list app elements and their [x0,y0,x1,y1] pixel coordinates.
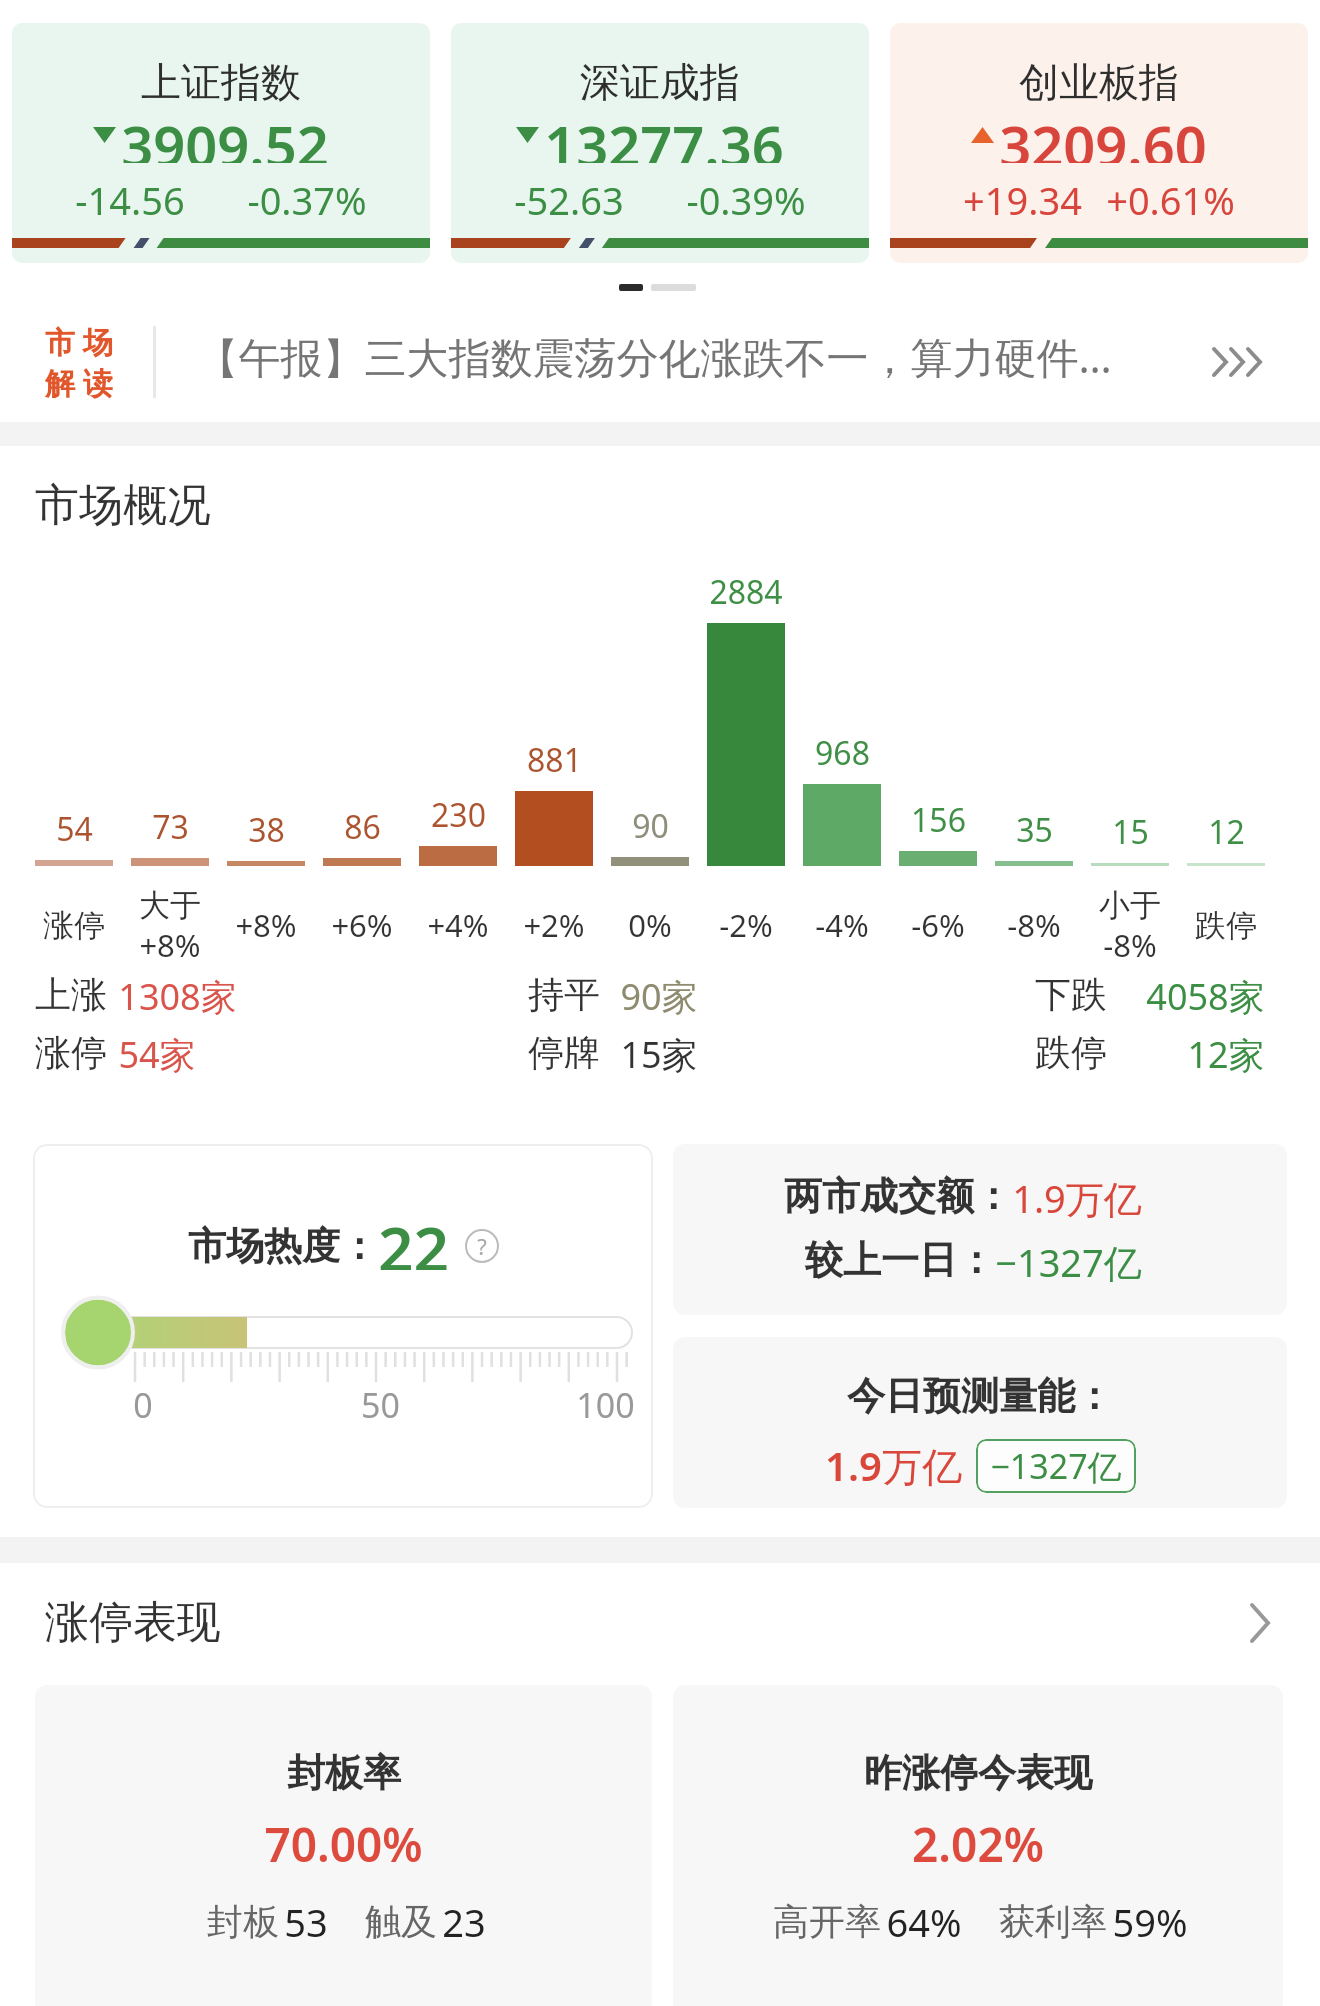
staticText: 创业板指 [1019,57,1179,105]
staticText: 230 [431,793,486,837]
staticText: -14.56 [75,174,185,220]
staticText: 0% [628,904,672,946]
staticText: 获利率 [994,1896,1112,1945]
staticText: 64% [886,1896,962,1948]
staticText: 昨涨停今表现 [864,1749,1092,1797]
staticText: 两市成交额： [784,1172,1012,1220]
staticText: 市场热度： [188,1222,378,1270]
staticText: 15家 [620,1030,698,1079]
button[interactable]: 涨停表现 [0,1585,1320,1660]
button[interactable]: 市场热度： [33,1144,653,1508]
staticText: 触及 [360,1896,442,1945]
staticText: -2% [719,904,773,946]
staticText: -6% [911,904,965,946]
staticText: 59% [1112,1896,1188,1948]
staticText: 1308家 [118,972,237,1021]
staticText: 968 [815,731,870,775]
staticText: +19.34 [963,174,1082,220]
staticText: -4% [815,904,869,946]
staticText: 涨停 [43,906,105,945]
staticText: 12 [1208,810,1245,854]
staticText: 高开率 [768,1896,886,1945]
staticText: 2884 [709,570,783,614]
staticText: 停牌 [528,1030,600,1075]
staticText: 封板 [202,1896,284,1945]
staticText: +8% [139,924,201,966]
staticText: 解 读 [45,362,113,403]
staticText: 38 [248,808,285,852]
staticText: +0.61% [1106,174,1235,220]
staticText: 70.00% [264,1813,423,1876]
staticText: 跌停 [1195,906,1257,945]
staticText: 73 [152,805,189,849]
staticText: -8% [1007,904,1061,946]
button[interactable]: 上证指数 [12,23,430,263]
staticText: 上涨 [35,972,107,1017]
button[interactable]: 市 场 [0,312,1320,412]
staticText: 下跌 [1035,972,1107,1017]
staticText: 90 [632,804,669,848]
staticText: 100 [576,1382,635,1428]
staticText: −1327亿 [995,1236,1142,1288]
staticText: 深证成指 [580,57,740,105]
staticText: ? [477,1231,487,1261]
staticText: -0.39% [686,174,806,220]
staticText: 3209.60 [999,107,1207,163]
staticText: 【午报】三大指数震荡分化涨跌不一，算力硬件… [196,328,1112,385]
staticText: 35 [1016,808,1053,852]
staticText: 大于 [139,886,201,925]
staticText: 4058家 [1146,972,1265,1021]
button[interactable]: 创业板指 [890,23,1308,263]
staticText: 上证指数 [141,57,301,105]
staticText: -0.37% [247,174,367,220]
staticText: 53 [284,1896,328,1948]
staticText: 13277.36 [544,107,784,163]
staticText: 881 [527,738,582,782]
staticText: 跌停 [1035,1030,1107,1075]
staticText: 2.02% [912,1813,1044,1876]
staticText: 3909.52 [121,107,329,163]
staticText: -52.63 [514,174,624,220]
staticText: +6% [331,904,393,946]
staticText: 15 [1112,810,1149,854]
staticText: 市场概况 [35,478,211,533]
staticText: 今日预测量能： [847,1372,1113,1420]
staticText: 90家 [620,972,698,1021]
button[interactable]: 今日预测量能： [673,1337,1287,1508]
staticText: 86 [344,805,381,849]
staticText: -8% [1103,924,1157,966]
staticText: 23 [442,1896,486,1948]
staticText: 54家 [118,1030,196,1079]
staticText: 小于 [1099,886,1161,925]
staticText: 涨停表现 [45,1595,221,1650]
staticText: 较上一日： [805,1236,995,1284]
staticText: 0 [133,1382,153,1428]
staticText: +4% [427,904,489,946]
staticText: −1327亿 [990,1443,1122,1489]
staticText: 1.9万亿 [825,1438,962,1493]
button[interactable]: 两市成交额： [673,1144,1287,1315]
staticText: 持平 [528,972,600,1017]
staticText: 1.9万亿 [1012,1172,1142,1224]
button[interactable]: 封板率 [35,1685,652,2006]
staticText: +8% [235,904,297,946]
button[interactable]: 深证成指 [451,23,869,263]
staticText: 156 [911,798,966,842]
staticText: 涨停 [35,1030,107,1075]
button[interactable]: 昨涨停今表现 [673,1685,1283,2006]
staticText: 50 [361,1382,400,1428]
staticText: 22 [378,1206,449,1270]
staticText: 12家 [1187,1030,1265,1079]
staticText: 54 [56,807,93,851]
staticText: 封板率 [287,1749,401,1797]
staticText: 市 场 [45,321,113,362]
staticText: +2% [523,904,585,946]
